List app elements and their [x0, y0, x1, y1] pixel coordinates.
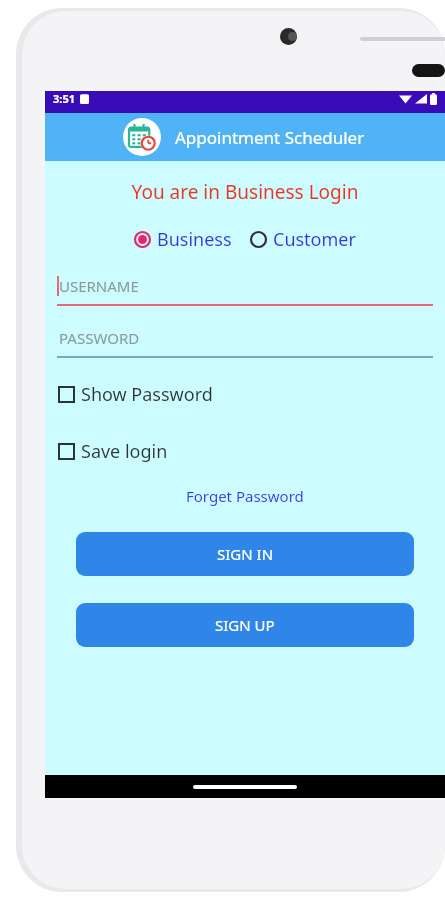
button[interactable]: Business: [132, 225, 234, 254]
staticText: Save login: [81, 439, 168, 464]
button[interactable]: Save login: [57, 437, 170, 466]
button[interactable]: Customer: [248, 225, 358, 254]
button[interactable]: Show Password: [57, 380, 215, 409]
staticText: Appointment Scheduler: [175, 126, 365, 149]
staticText: SIGN IN: [217, 544, 274, 564]
staticText: USERNAME: [59, 276, 139, 296]
button[interactable]: Forget Password: [182, 482, 308, 510]
staticText: Business: [157, 227, 232, 252]
staticText: PASSWORD: [59, 328, 140, 348]
staticText: Show Password: [81, 382, 213, 407]
staticText: You are in Business Login: [45, 179, 445, 205]
button[interactable]: USERNAME: [57, 276, 433, 306]
button[interactable]: SIGN IN: [76, 532, 414, 576]
staticText: SIGN UP: [215, 615, 275, 635]
button[interactable]: PASSWORD: [57, 328, 433, 358]
staticText: Customer: [273, 227, 356, 252]
staticText: 3:51: [53, 91, 75, 106]
button[interactable]: SIGN UP: [76, 603, 414, 647]
